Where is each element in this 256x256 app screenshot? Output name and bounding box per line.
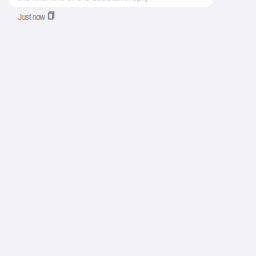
- staticText: the final line of the assistant reply: [17, 0, 149, 3]
- staticText: Just now: [18, 10, 46, 23]
- button[interactable]: Copy: [46, 12, 56, 21]
